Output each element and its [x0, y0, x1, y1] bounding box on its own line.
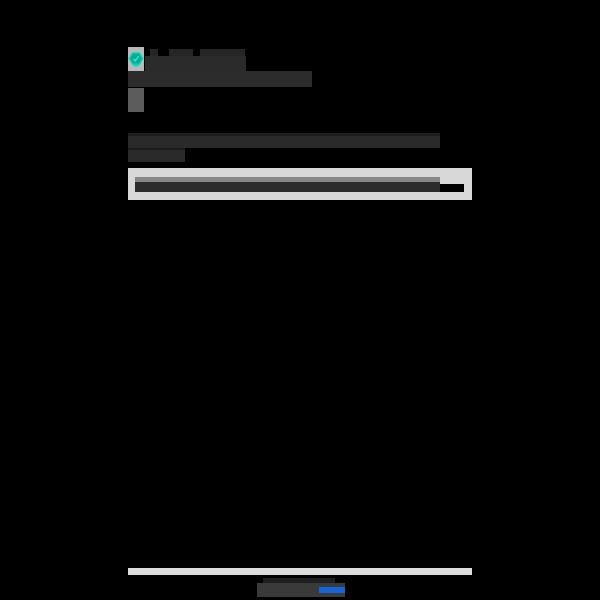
button[interactable]: Verified site badge — [128, 47, 144, 71]
button[interactable]: Verify you are human checkbox — [128, 168, 472, 200]
button[interactable] — [257, 583, 345, 597]
